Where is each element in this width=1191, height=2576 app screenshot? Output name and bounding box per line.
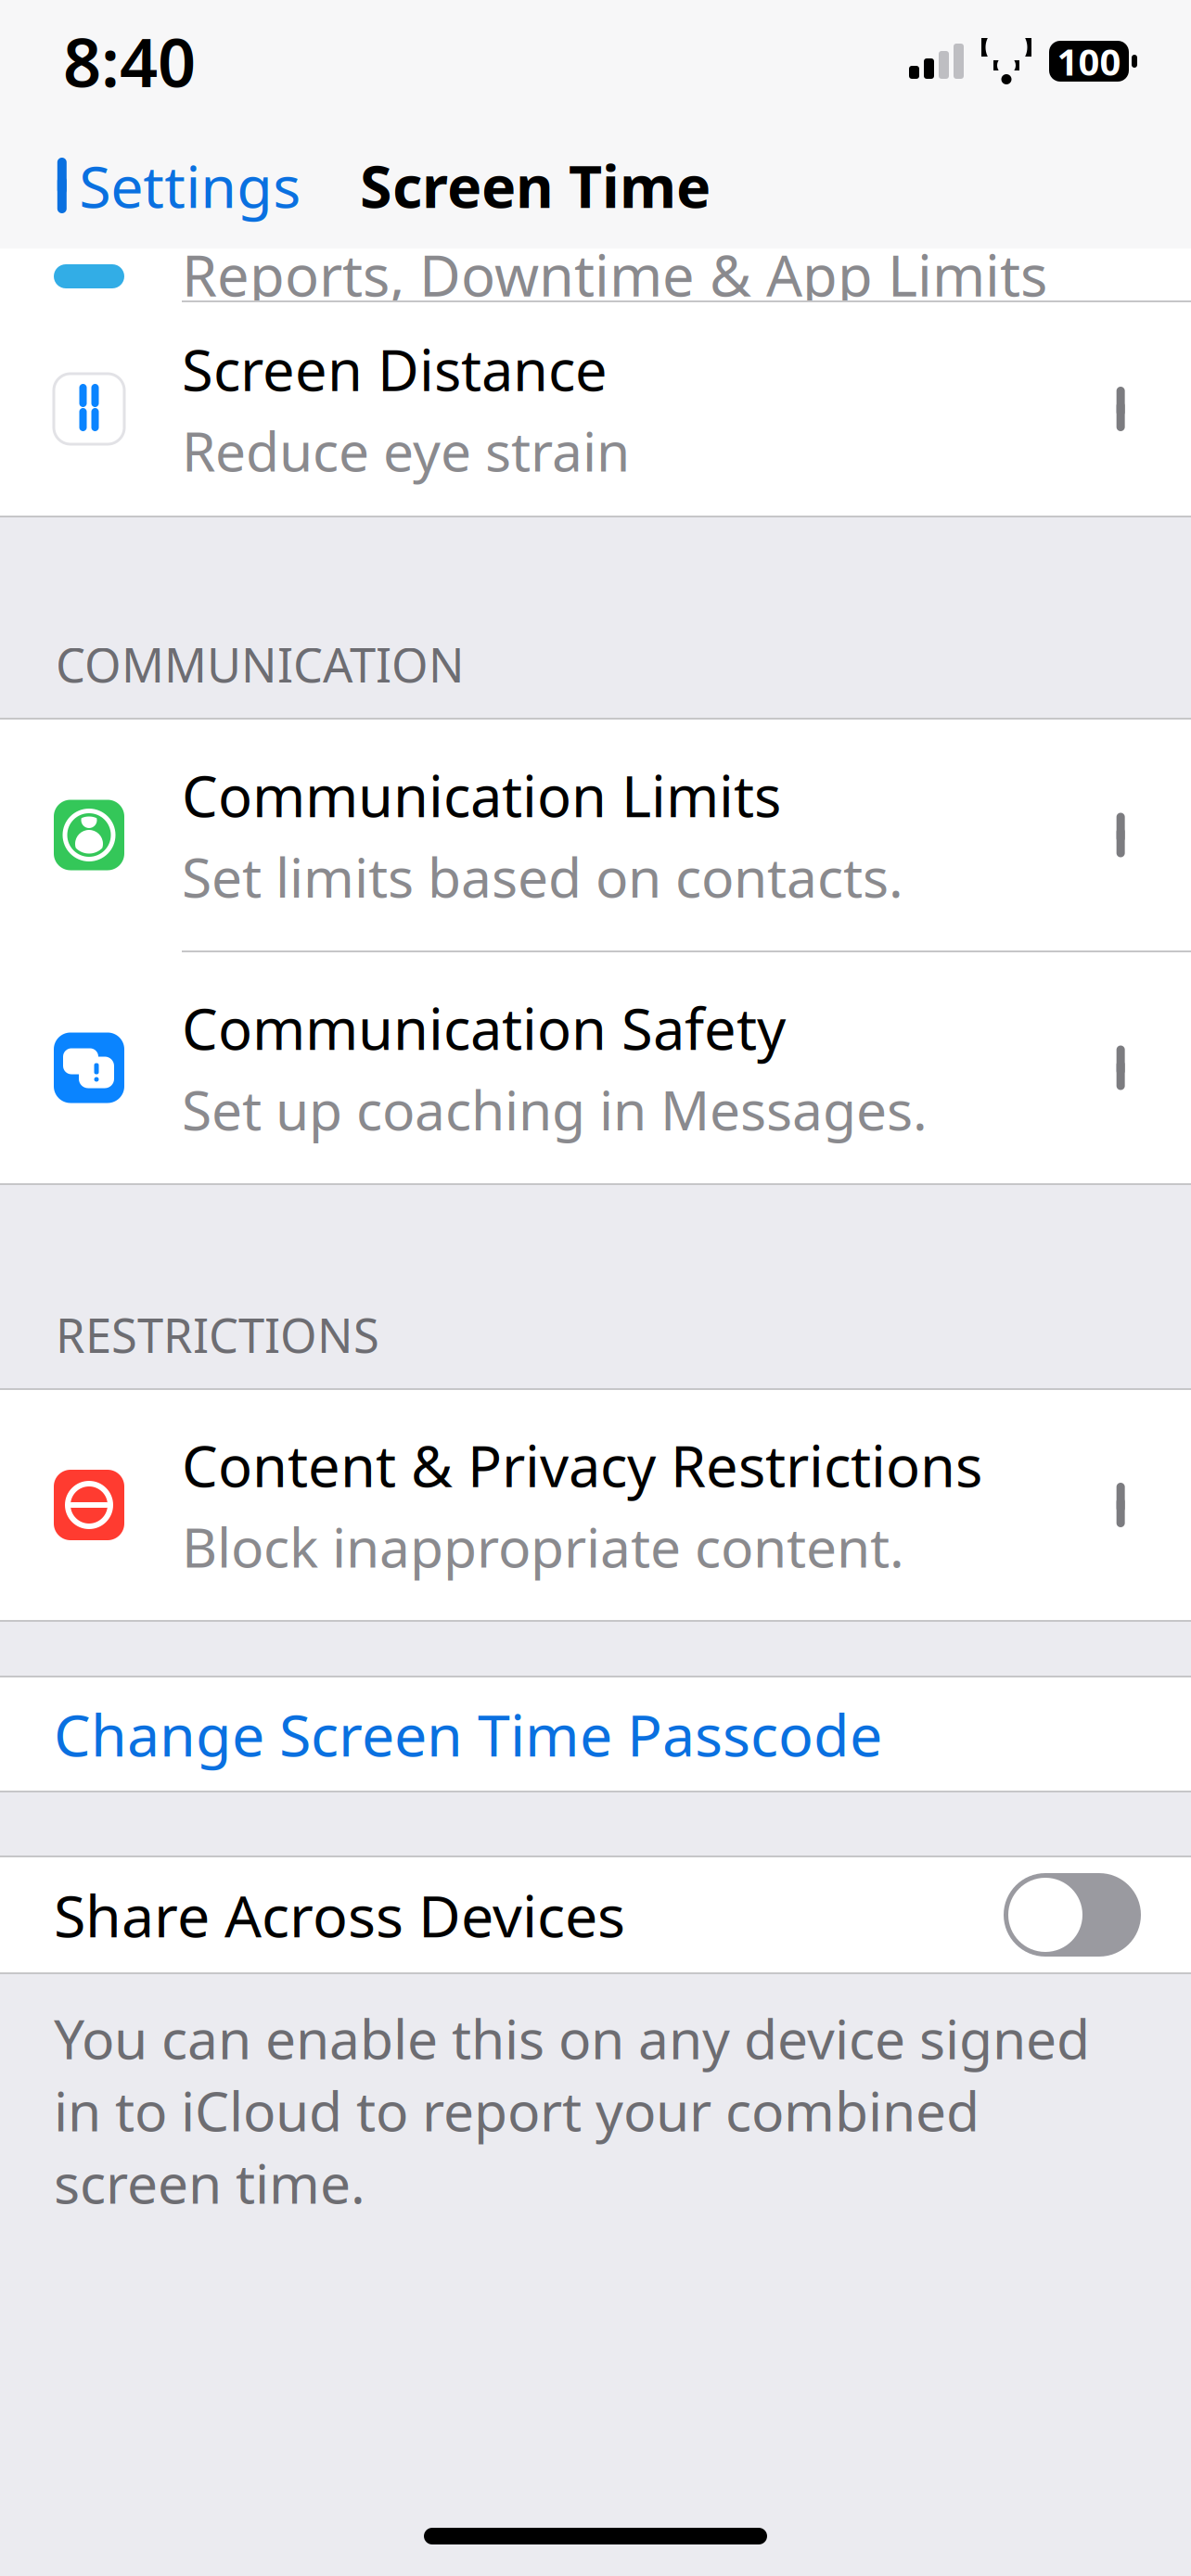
button[interactable]: Reports, Downtime & App Limits: [0, 249, 1191, 300]
staticText: Change Screen Time Passcode: [54, 1695, 882, 1773]
button[interactable]: Change Screen Time Passcode: [0, 1677, 1191, 1791]
staticText: Reports, Downtime & App Limits: [182, 237, 1047, 312]
button[interactable]: Screen Distance: [0, 302, 1191, 516]
staticText: Reduce eye strain: [182, 414, 630, 487]
staticText: Communication Limits: [182, 757, 781, 833]
staticText: Screen Distance: [182, 331, 608, 407]
button[interactable]: Communication Safety: [0, 952, 1191, 1183]
staticText: Block inappropriate content.: [182, 1510, 904, 1583]
staticText: Communication Safety: [182, 990, 786, 1066]
staticText: You can enable this on any device signed…: [54, 2002, 1090, 2219]
button[interactable]: Settings: [0, 134, 319, 237]
staticText: Set limits based on contacts.: [182, 840, 903, 913]
staticText: Screen Time: [360, 147, 711, 224]
staticText: 100: [1057, 37, 1121, 86]
staticText: Share Across Devices: [54, 1876, 625, 1953]
staticText: Set up coaching in Messages.: [182, 1073, 928, 1145]
staticText: COMMUNICATION: [56, 633, 465, 695]
staticText: Content & Privacy Restrictions: [182, 1427, 982, 1503]
button[interactable]: Content & Privacy Restrictions: [0, 1390, 1191, 1620]
staticText: 8:40: [63, 17, 196, 106]
button[interactable]: Communication Limits: [0, 720, 1191, 950]
staticText: Settings: [79, 147, 301, 224]
button[interactable]: Share Across Devices: [0, 1857, 1191, 1972]
staticText: RESTRICTIONS: [56, 1303, 379, 1366]
